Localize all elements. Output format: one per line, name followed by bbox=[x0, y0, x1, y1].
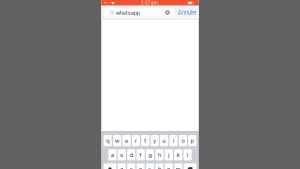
button[interactable]: Annuler bbox=[174, 8, 199, 17]
staticText: q bbox=[106, 137, 109, 144]
button[interactable]: r bbox=[132, 135, 140, 146]
button[interactable]: Delete bbox=[183, 163, 196, 169]
button[interactable]: u bbox=[160, 135, 168, 146]
button[interactable]: t bbox=[141, 135, 149, 146]
staticText: s bbox=[120, 151, 123, 158]
staticText: h bbox=[158, 151, 161, 158]
staticText: m bbox=[176, 165, 181, 169]
staticText: n bbox=[167, 165, 170, 169]
staticText: z bbox=[120, 165, 123, 169]
button[interactable]: m bbox=[174, 163, 182, 169]
button[interactable]: y bbox=[151, 135, 159, 146]
button[interactable]: w bbox=[113, 135, 121, 146]
staticText: 2:37 a.m. bbox=[141, 0, 159, 6]
staticText: b bbox=[158, 165, 161, 169]
button[interactable]: d bbox=[127, 149, 135, 160]
staticText: d bbox=[130, 151, 133, 158]
staticText: x bbox=[130, 165, 133, 169]
staticText: i bbox=[173, 137, 174, 144]
staticText: whatsapp bbox=[116, 9, 140, 16]
button[interactable]: v bbox=[146, 163, 154, 169]
button[interactable]: f bbox=[136, 149, 145, 160]
staticText: p bbox=[191, 137, 194, 144]
staticText: u bbox=[163, 137, 166, 144]
staticText: o bbox=[181, 137, 184, 144]
button[interactable]: Clear text bbox=[165, 10, 174, 15]
button[interactable]: e bbox=[122, 135, 131, 146]
staticText: c bbox=[139, 165, 142, 169]
staticText: j bbox=[168, 151, 169, 158]
button[interactable]: j bbox=[165, 149, 173, 160]
button[interactable]: l bbox=[183, 149, 192, 160]
button[interactable]: p bbox=[188, 135, 196, 146]
button[interactable]: k bbox=[174, 149, 182, 160]
staticText: e bbox=[125, 137, 128, 144]
staticText: l bbox=[187, 151, 188, 158]
button[interactable]: Shift bbox=[104, 163, 116, 169]
button[interactable]: o bbox=[179, 135, 187, 146]
button[interactable]: a bbox=[108, 149, 116, 160]
button[interactable]: g bbox=[146, 149, 154, 160]
staticText: f bbox=[140, 151, 142, 158]
staticText: r bbox=[135, 137, 137, 144]
staticText: y bbox=[153, 137, 156, 144]
staticText: w bbox=[115, 137, 119, 144]
button[interactable]: b bbox=[155, 163, 163, 169]
staticText: v bbox=[148, 165, 151, 169]
staticText: Annuler bbox=[178, 9, 197, 16]
button[interactable]: h bbox=[155, 149, 163, 160]
button[interactable]: q bbox=[104, 135, 112, 146]
button[interactable]: s bbox=[118, 149, 126, 160]
button[interactable]: z bbox=[118, 163, 126, 169]
button[interactable]: n bbox=[165, 163, 173, 169]
staticText: t bbox=[144, 137, 146, 144]
button[interactable]: c bbox=[136, 163, 145, 169]
staticText: g bbox=[148, 151, 151, 158]
button[interactable]: i bbox=[169, 135, 178, 146]
button[interactable]: x bbox=[127, 163, 135, 169]
staticText: k bbox=[177, 151, 180, 158]
staticText: a bbox=[111, 151, 114, 158]
